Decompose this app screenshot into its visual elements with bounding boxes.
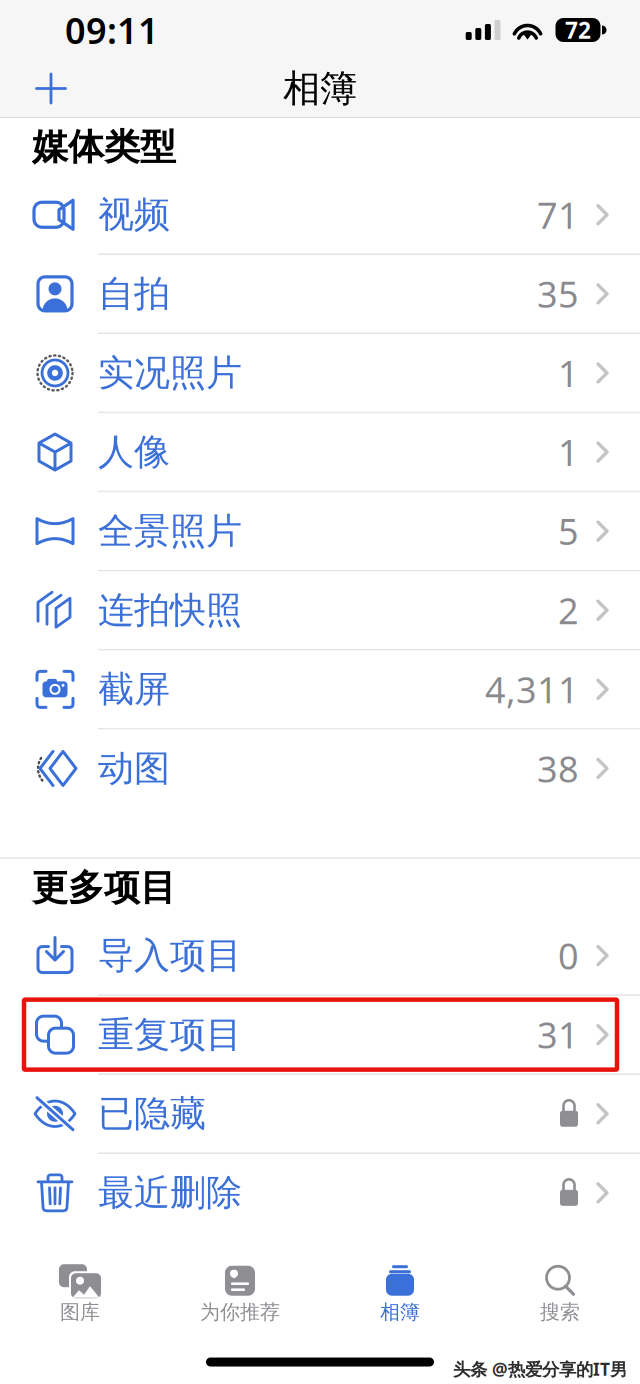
staticText: 搜索	[540, 1300, 580, 1324]
staticText: 导入项目	[98, 933, 242, 978]
staticText: 71	[537, 191, 579, 239]
button[interactable]: 新建相簿	[24, 60, 78, 116]
button[interactable]: 动图	[0, 730, 640, 807]
staticText: 1	[558, 428, 579, 476]
button[interactable]: 图库	[0, 1252, 160, 1336]
staticText: 31	[537, 1011, 579, 1058]
staticText: 5	[558, 507, 579, 555]
staticText: 视频	[98, 193, 170, 237]
staticText: 动图	[98, 746, 170, 790]
button[interactable]: 视频	[0, 176, 640, 253]
staticText: 38	[537, 744, 579, 792]
staticText: 相簿	[283, 66, 357, 111]
button[interactable]: 截屏	[0, 651, 640, 728]
button[interactable]: 导入项目	[0, 917, 640, 994]
button[interactable]: 实况照片	[0, 334, 640, 412]
staticText: 相簿	[380, 1300, 420, 1324]
staticText: 更多项目	[32, 866, 176, 910]
button[interactable]: 自拍	[0, 255, 640, 333]
staticText: 人像	[98, 430, 170, 474]
staticText: 72	[565, 15, 591, 45]
staticText: 重复项目	[98, 1012, 242, 1057]
staticText: 图库	[60, 1300, 100, 1324]
button[interactable]: 搜索	[480, 1252, 640, 1336]
button[interactable]: 连拍快照	[0, 571, 640, 649]
button[interactable]: 人像	[0, 413, 640, 491]
staticText: 连拍快照	[98, 588, 242, 632]
button[interactable]: 全景照片	[0, 492, 640, 570]
staticText: 头条 @热爱分享的IT男	[453, 1357, 627, 1380]
button[interactable]: 最近删除	[0, 1154, 640, 1232]
staticText: 09:11	[65, 6, 159, 54]
staticText: 为你推荐	[200, 1300, 280, 1324]
button[interactable]: 相簿	[320, 1252, 480, 1336]
staticText: 截屏	[98, 667, 170, 711]
staticText: 1	[558, 349, 579, 397]
staticText: 35	[537, 270, 579, 318]
button[interactable]: 重复项目	[0, 996, 640, 1073]
button[interactable]: 为你推荐	[160, 1252, 320, 1336]
staticText: 实况照片	[98, 351, 242, 395]
staticText: 全景照片	[98, 509, 242, 553]
staticText: 2	[558, 586, 579, 634]
staticText: 已隐藏	[98, 1092, 206, 1136]
staticText: 自拍	[98, 272, 170, 316]
staticText: 4,311	[485, 665, 579, 713]
staticText: 最近删除	[98, 1171, 242, 1215]
button[interactable]: 已隐藏	[0, 1075, 640, 1152]
staticText: 0	[558, 932, 579, 979]
staticText: 媒体类型	[32, 125, 176, 169]
